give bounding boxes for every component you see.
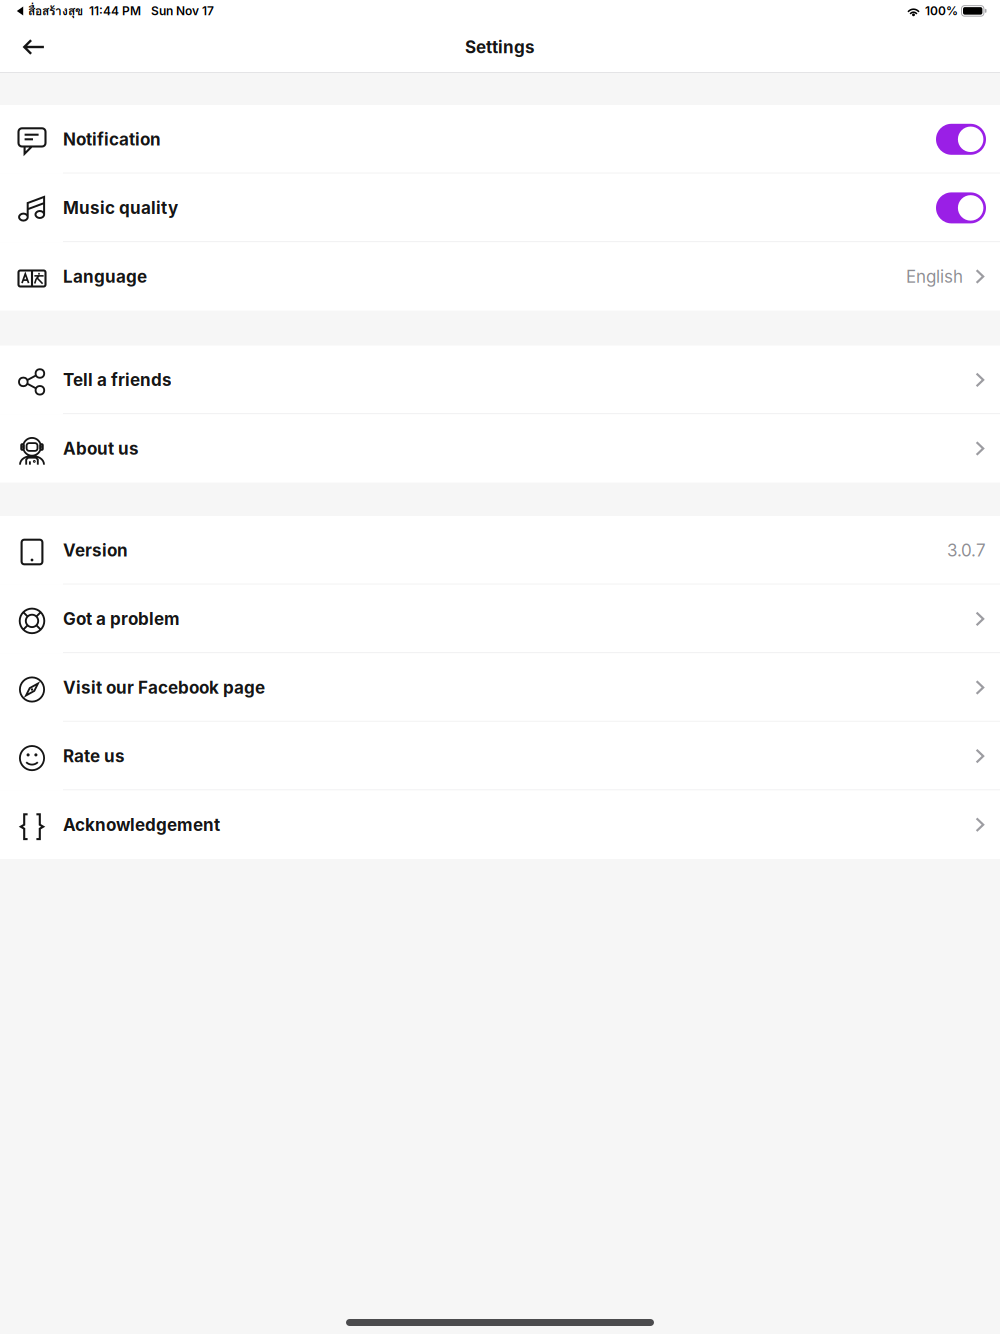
button[interactable]: Acknowledgement [0,790,1000,859]
staticText: Visit our Facebook page [63,677,265,698]
button[interactable]: About us [0,414,1000,483]
staticText: Tell a friends [63,370,172,390]
staticText: สื่อสร้างสุข [28,1,83,21]
button[interactable]: Back [0,22,64,72]
staticText: Language [63,266,147,287]
button[interactable]: Got a problem [0,585,1000,653]
button[interactable]: Notification [0,105,1000,174]
staticText: Got a problem [63,609,180,629]
staticText: Version [63,540,128,561]
button[interactable]: Version [0,516,1000,585]
staticText: 100% [925,4,958,18]
staticText: English [906,266,963,287]
staticText: Rate us [63,746,125,766]
staticText: 11:44 PM [89,4,141,18]
staticText: Sun Nov 17 [151,4,214,18]
button[interactable]: Visit our Facebook page [0,653,1000,722]
staticText: About us [63,438,139,459]
button[interactable]: Music quality [0,174,1000,242]
staticText: Settings [465,37,535,57]
button[interactable]: Tell a friends [0,346,1000,414]
button[interactable]: Language [0,242,1000,311]
staticText: Music quality [63,198,178,218]
staticText: 3.0.7 [947,540,986,561]
staticText: Acknowledgement [63,814,220,835]
button[interactable]: Rate us [0,722,1000,790]
staticText: Notification [63,129,161,150]
